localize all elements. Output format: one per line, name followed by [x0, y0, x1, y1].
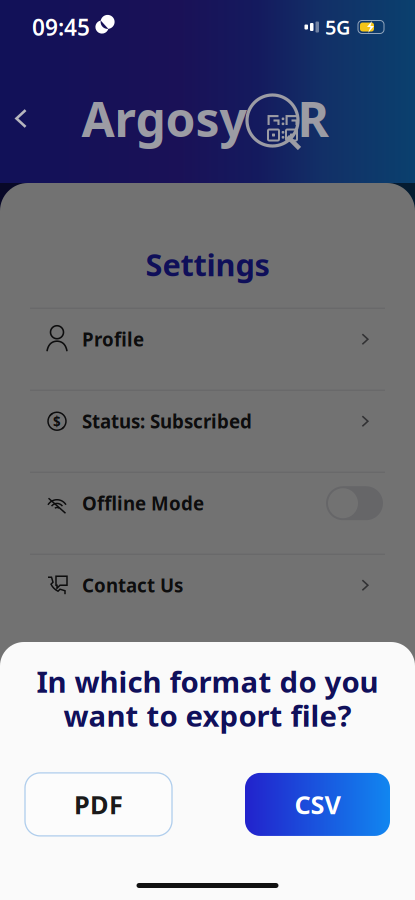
staticText: In which format do you	[36, 662, 378, 701]
staticText: Argosy	[81, 87, 246, 150]
staticText: CSV	[294, 788, 340, 821]
staticText: Status: Subscribed	[82, 409, 252, 434]
button[interactable]: Contact Us	[30, 555, 385, 636]
staticText: $	[53, 412, 61, 430]
staticText: PDF	[74, 788, 123, 821]
button[interactable]: PDF	[25, 773, 172, 836]
staticText: Offline Mode	[82, 491, 204, 516]
button[interactable]: Profile	[30, 309, 385, 390]
staticText: Contact Us	[82, 573, 183, 598]
button[interactable]: Offline Mode	[30, 473, 385, 554]
staticText: 5G	[325, 14, 351, 40]
staticText: Profile	[82, 327, 144, 352]
button[interactable]: $	[30, 391, 385, 472]
button[interactable]: CSV	[245, 773, 390, 836]
staticText: want to export file?	[63, 696, 351, 735]
staticText: Settings	[145, 244, 269, 285]
staticText: 09:45	[32, 12, 90, 42]
button[interactable]: Back	[0, 95, 42, 141]
staticText: R	[297, 87, 328, 150]
